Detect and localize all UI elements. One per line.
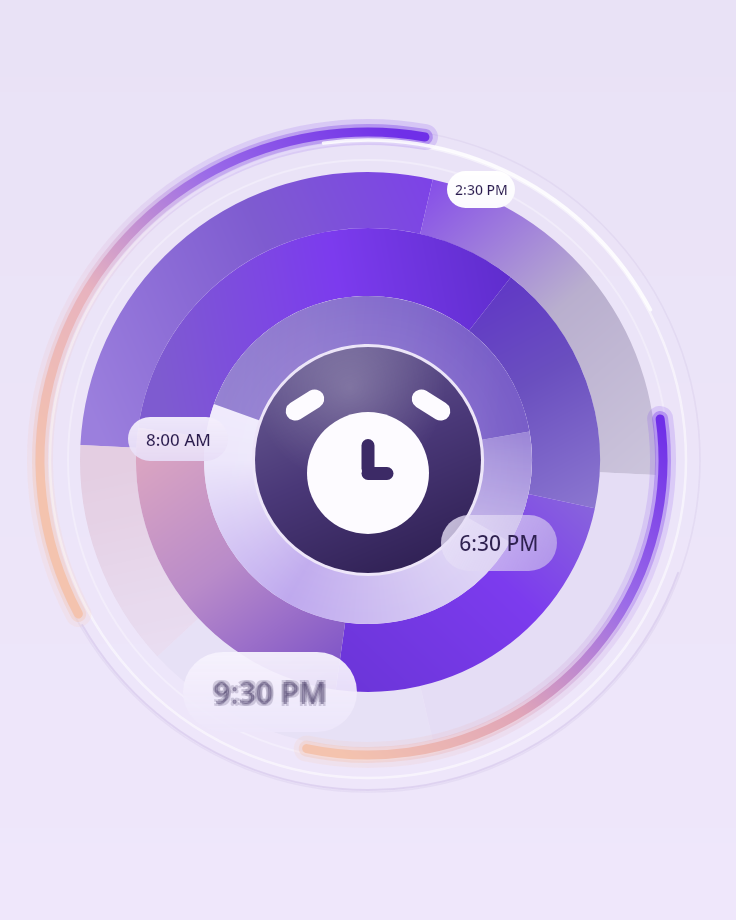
staticText: 9:30 PM (211, 674, 325, 715)
staticText: 9:30 PM (215, 674, 329, 715)
button[interactable]: 8:00 AM (128, 417, 228, 461)
staticText: 2:30 PM (455, 180, 508, 199)
staticText: 9:30 PM (211, 670, 325, 711)
staticText: 9:30 PM (213, 672, 327, 713)
staticText: 8:00 AM (146, 428, 211, 451)
button[interactable]: 9:30 PM (183, 652, 357, 732)
button[interactable]: 2:30 PM (447, 171, 515, 208)
button[interactable]: 6:30 PM (441, 515, 557, 571)
staticText: 6:30 PM (459, 529, 539, 558)
button[interactable]: Alarm (255, 347, 481, 573)
staticText: 9:30 PM (215, 670, 329, 711)
